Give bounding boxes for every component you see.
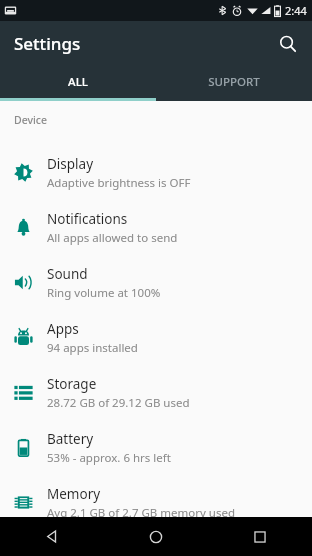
staticText: Adaptive brightness is OFF xyxy=(47,175,191,191)
button[interactable]: Apps xyxy=(0,310,312,365)
staticText: Apps xyxy=(47,320,79,338)
button[interactable]: Battery xyxy=(0,420,312,475)
staticText: Notifications xyxy=(47,210,128,228)
staticText: Display xyxy=(47,155,94,173)
staticText: Battery xyxy=(47,430,94,448)
staticText: Storage xyxy=(47,375,97,393)
button[interactable]: Search xyxy=(270,26,306,62)
staticText: 53% - approx. 6 hrs left xyxy=(47,450,171,466)
staticText: SUPPORT xyxy=(208,74,260,90)
button[interactable]: ALL xyxy=(0,66,156,98)
button[interactable]: SUPPORT xyxy=(156,66,312,98)
staticText: 2:44 xyxy=(285,3,307,18)
button[interactable]: Home xyxy=(104,517,208,556)
staticText: Device xyxy=(14,113,48,127)
staticText: 94 apps installed xyxy=(47,340,138,356)
staticText: Ring volume at 100% xyxy=(47,285,161,301)
button[interactable]: Sound xyxy=(0,255,312,310)
staticText: Avg 2.1 GB of 2.7 GB memory used xyxy=(47,505,236,517)
staticText: Sound xyxy=(47,265,88,283)
button[interactable]: Display xyxy=(0,145,312,200)
button[interactable]: Recents xyxy=(208,517,312,556)
staticText: All apps allowed to send xyxy=(47,230,178,246)
button[interactable]: Memory xyxy=(0,475,312,517)
button[interactable]: Back xyxy=(0,517,104,556)
staticText: 28.72 GB of 29.12 GB used xyxy=(47,395,190,411)
staticText: Memory xyxy=(47,485,101,503)
button[interactable]: Notifications xyxy=(0,200,312,255)
staticText: Settings xyxy=(14,32,81,55)
button[interactable]: Storage xyxy=(0,365,312,420)
staticText: ALL xyxy=(68,74,88,90)
